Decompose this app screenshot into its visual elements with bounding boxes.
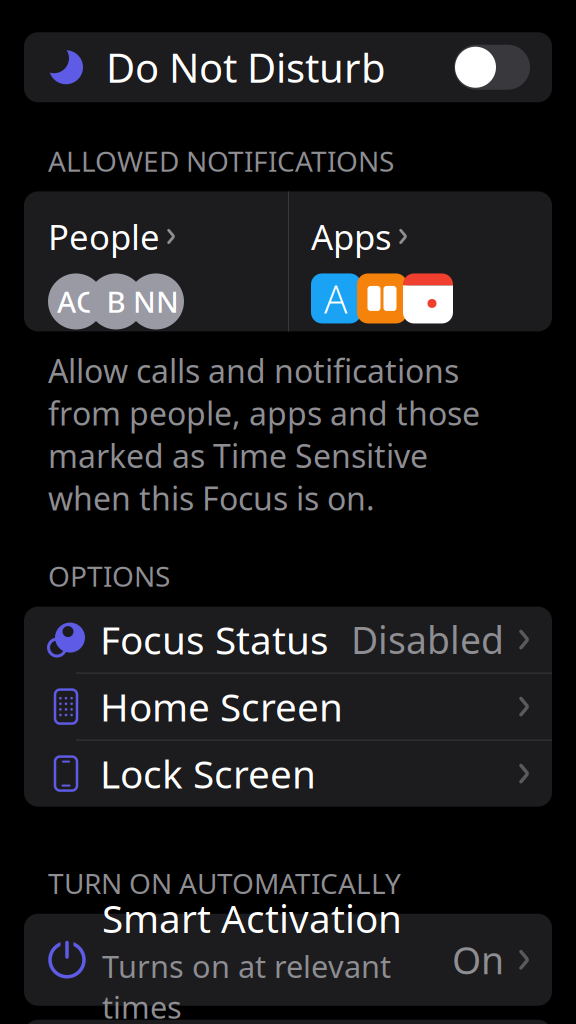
staticText: Apps [311,213,392,259]
button[interactable]: 12:00 AM [24,1020,552,1024]
staticText: AC [57,282,95,321]
staticText: A [324,273,348,324]
staticText: 12:00 AM [102,1019,270,1024]
staticText: Turns on at relevant times [102,946,391,1024]
staticText: Lock Screen [100,748,316,799]
staticText: Disabled [351,615,504,664]
button[interactable]: Do Not Disturb [24,32,552,102]
staticText: Allow calls and notifications from peopl… [48,349,480,519]
staticText: On [452,935,504,985]
staticText: ALLOWED NOTIFICATIONS [48,142,394,179]
button[interactable]: Apps [289,191,552,331]
staticText: Focus Status [100,614,329,665]
staticText: NN [133,282,179,321]
staticText: Smart Activation [102,892,402,944]
staticText: Home Screen [100,681,343,732]
button[interactable]: Home Screen [24,674,552,740]
button[interactable]: People [24,191,288,331]
button[interactable]: Focus Status [24,607,552,673]
staticText: People [48,213,160,259]
staticText: Do Not Disturb [106,41,386,94]
staticText: OPTIONS [48,557,170,595]
button[interactable]: Lock Screen [24,741,552,807]
staticText: B [106,282,125,321]
button[interactable]: Smart Activation [24,914,552,1006]
staticText: TURN ON AUTOMATICALLY [48,865,401,902]
